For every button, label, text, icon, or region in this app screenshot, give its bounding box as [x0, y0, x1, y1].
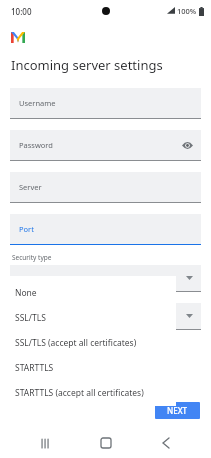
button[interactable]: STARTTLS (accept all certificates): [7, 380, 176, 405]
staticText: NEXT: [167, 405, 188, 416]
button[interactable]: Password: [10, 130, 201, 161]
button[interactable]: None: [7, 280, 176, 305]
staticText: STARTTLS: [15, 362, 54, 374]
button[interactable]: Home: [90, 428, 122, 458]
button[interactable]: Recent apps: [29, 428, 61, 458]
staticText: SSL/TLS (accept all certificates): [15, 337, 137, 349]
staticText: Security type: [12, 253, 52, 262]
staticText: SSL/TLS: [15, 312, 46, 324]
button[interactable]: Show password: [179, 137, 195, 153]
staticText: Port: [19, 224, 34, 234]
staticText: Password: [19, 140, 53, 150]
staticText: None: [15, 287, 37, 299]
staticText: Server: [19, 182, 42, 192]
button[interactable]: Back: [150, 428, 182, 458]
button[interactable]: Server: [10, 172, 201, 203]
staticText: Username: [19, 98, 56, 108]
staticText: 10:00: [11, 6, 32, 17]
button[interactable]: NEXT: [155, 402, 200, 419]
button[interactable]: SSL/TLS (accept all certificates): [7, 330, 176, 355]
button[interactable]: [10, 265, 201, 291]
button[interactable]: Username: [10, 88, 201, 119]
staticText: Incoming server settings: [11, 56, 163, 74]
staticText: 100%: [177, 6, 197, 16]
staticText: STARTTLS (accept all certificates): [15, 387, 144, 399]
button[interactable]: [10, 303, 201, 329]
button[interactable]: STARTTLS: [7, 355, 176, 380]
button[interactable]: Port: [10, 214, 201, 245]
button[interactable]: SSL/TLS: [7, 305, 176, 330]
